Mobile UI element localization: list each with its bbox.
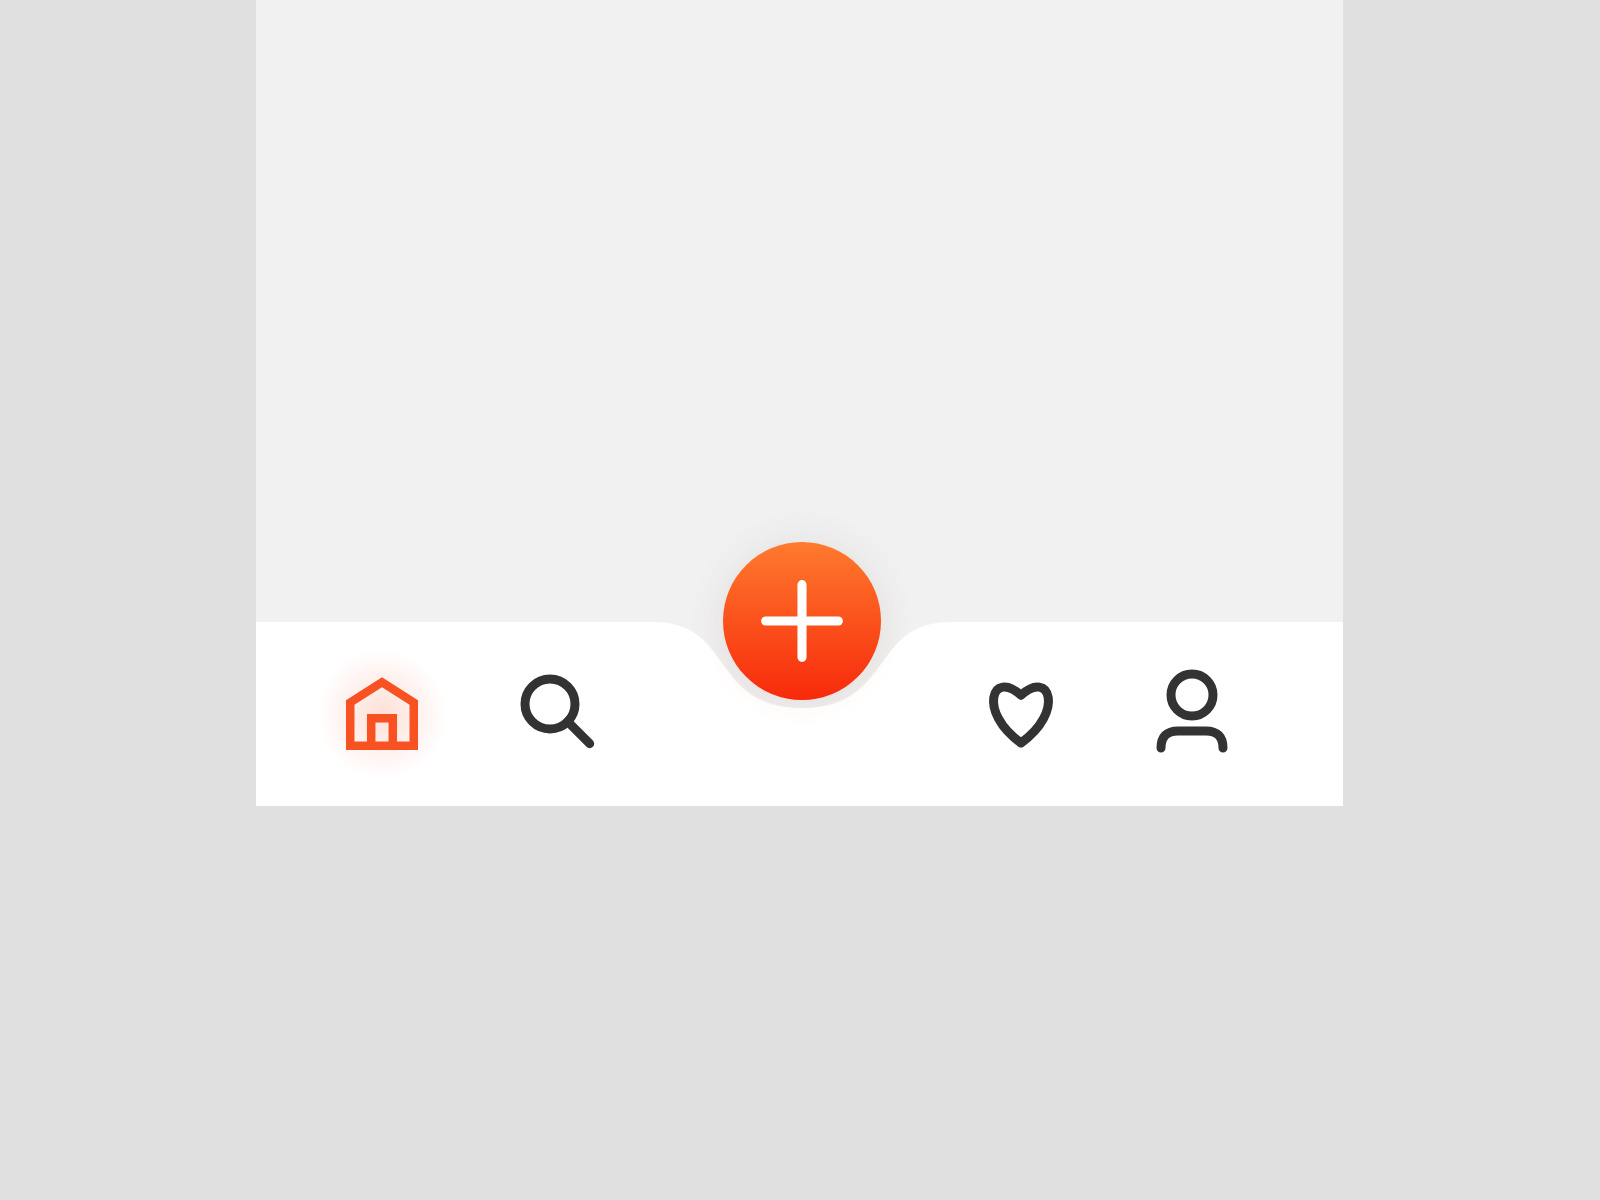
button[interactable]: Home [320,652,444,776]
button[interactable]: Profile [1130,650,1254,774]
button[interactable]: Favorites [959,650,1083,774]
button[interactable]: Search [490,648,614,772]
button[interactable]: Create new post [723,542,881,700]
